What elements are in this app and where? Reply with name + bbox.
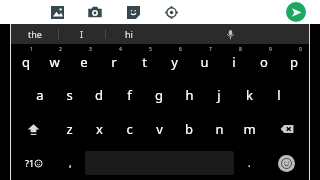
button[interactable]: j — [204, 78, 234, 112]
staticText: a — [36, 86, 44, 104]
staticText: , — [69, 156, 72, 170]
staticText: y — [171, 53, 178, 71]
button[interactable]: t — [129, 45, 159, 78]
button[interactable]: Location — [162, 3, 180, 21]
button[interactable]: Backspace — [264, 112, 309, 146]
button[interactable]: ?1 — [11, 146, 55, 180]
staticText: 9 — [269, 46, 272, 53]
staticText: x — [96, 120, 103, 138]
staticText: d — [95, 86, 103, 104]
button[interactable]: f — [114, 78, 144, 112]
staticText: I — [80, 28, 84, 40]
staticText: p — [290, 53, 298, 71]
staticText: u — [200, 53, 209, 71]
staticText: the — [28, 28, 42, 40]
staticText: 3 — [89, 46, 92, 53]
button[interactable]: Stickers — [124, 3, 142, 21]
button[interactable]: w — [40, 45, 69, 78]
staticText: k — [246, 86, 253, 104]
button[interactable]: Emoji — [264, 146, 309, 180]
button[interactable]: x — [84, 112, 114, 146]
staticText: z — [66, 120, 73, 138]
staticText: r — [111, 53, 117, 71]
button[interactable]: , — [55, 146, 85, 180]
staticText: o — [260, 53, 268, 71]
staticText: 5 — [149, 46, 152, 53]
staticText: n — [215, 120, 224, 138]
staticText: q — [22, 53, 30, 71]
staticText: j — [217, 86, 221, 104]
button[interactable]: r — [99, 45, 129, 78]
staticText: m — [243, 120, 256, 138]
staticText: c — [126, 120, 133, 138]
button[interactable]: v — [144, 112, 174, 146]
button[interactable]: n — [204, 112, 234, 146]
staticText: hi — [125, 28, 133, 40]
staticText: . — [248, 156, 251, 170]
button[interactable]: i — [219, 45, 249, 78]
button[interactable]: . — [234, 146, 264, 180]
button[interactable]: l — [264, 78, 294, 112]
button[interactable]: Gallery — [48, 3, 66, 21]
staticText: v — [156, 120, 163, 138]
button[interactable]: the — [11, 24, 58, 44]
staticText: b — [185, 120, 193, 138]
staticText: 0 — [299, 46, 302, 53]
staticText: e — [80, 53, 88, 71]
staticText: 7 — [209, 46, 212, 53]
staticText: i — [232, 53, 236, 71]
button[interactable]: y — [159, 45, 189, 78]
button[interactable]: s — [54, 78, 84, 112]
staticText: 8 — [239, 46, 242, 53]
staticText: 4 — [119, 46, 122, 53]
button[interactable]: hi — [106, 24, 152, 44]
staticText: 2 — [59, 46, 62, 53]
button[interactable]: k — [234, 78, 264, 112]
button[interactable]: m — [234, 112, 264, 146]
button[interactable]: z — [55, 112, 84, 146]
staticText: ?1 — [25, 157, 35, 169]
button[interactable]: Voice input — [152, 24, 309, 44]
button[interactable]: I — [59, 24, 105, 44]
staticText: w — [49, 53, 60, 71]
staticText: f — [127, 86, 132, 104]
staticText: g — [155, 86, 163, 104]
button[interactable]: Send — [286, 2, 306, 22]
staticText: s — [66, 86, 73, 104]
staticText: t — [142, 53, 147, 71]
button[interactable]: u — [189, 45, 219, 78]
button[interactable]: c — [114, 112, 144, 146]
button[interactable]: d — [84, 78, 114, 112]
staticText: l — [277, 86, 281, 104]
staticText: h — [185, 86, 194, 104]
button[interactable]: o — [249, 45, 279, 78]
button[interactable]: Camera — [86, 3, 104, 21]
button[interactable]: Shift — [11, 112, 55, 146]
staticText: 1 — [30, 46, 33, 53]
button[interactable]: q — [11, 45, 40, 78]
staticText: 6 — [179, 46, 182, 53]
button[interactable]: h — [174, 78, 204, 112]
button[interactable]: e — [69, 45, 99, 78]
button[interactable]: p — [279, 45, 309, 78]
button[interactable]: b — [174, 112, 204, 146]
button[interactable]: a — [25, 78, 54, 112]
button[interactable]: g — [144, 78, 174, 112]
